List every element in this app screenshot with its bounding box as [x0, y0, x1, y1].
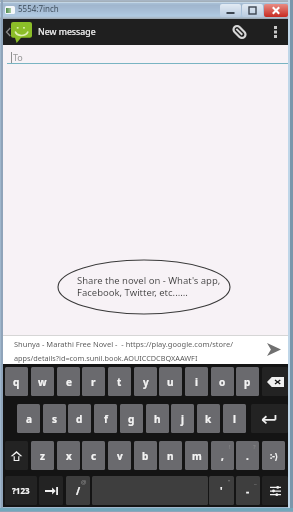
- staticText: @: [81, 478, 87, 486]
- staticText: apps/details?id=com.sunil.book.AOUICCDCB…: [14, 353, 198, 363]
- staticText: b: [142, 449, 149, 463]
- button[interactable]: @: [66, 476, 90, 505]
- button[interactable]: ": [209, 476, 234, 505]
- staticText: q: [13, 375, 20, 389]
- staticText: f: [104, 412, 108, 426]
- button[interactable]: k: [197, 404, 220, 433]
- staticText: New message: [38, 26, 96, 38]
- staticText: i: [195, 375, 198, 389]
- staticText: !: [229, 443, 231, 451]
- staticText: o: [219, 375, 226, 389]
- staticText: d: [76, 412, 83, 426]
- staticText: v: [117, 449, 123, 463]
- button[interactable]: o: [211, 367, 234, 396]
- button[interactable]: l: [223, 404, 246, 433]
- button[interactable]: a: [17, 404, 40, 433]
- button[interactable]: j: [171, 404, 194, 433]
- button[interactable]: Attach: [226, 19, 252, 45]
- button[interactable]: x: [57, 441, 80, 470]
- staticText: 5554:7inch: [18, 3, 59, 14]
- button[interactable]: i: [185, 367, 208, 396]
- button[interactable]: m: [185, 441, 208, 470]
- staticText: Share the novel on - What's app,: [77, 274, 221, 287]
- button[interactable]: s: [43, 404, 66, 433]
- button[interactable]: h: [146, 404, 169, 433]
- button[interactable]: v: [108, 441, 131, 470]
- staticText: -: [246, 484, 250, 498]
- staticText: :-): [270, 450, 278, 461]
- button[interactable]: Settings: [262, 476, 288, 505]
- staticText: t: [117, 375, 122, 389]
- staticText: Facebook, Twitter, etc......: [77, 286, 188, 299]
- button[interactable]: !: [211, 441, 234, 470]
- button[interactable]: d: [68, 404, 91, 433]
- button[interactable]: ?: [236, 441, 259, 470]
- button[interactable]: q: [5, 367, 28, 396]
- button[interactable]: r: [82, 367, 105, 396]
- staticText: c: [91, 449, 97, 463]
- button[interactable]: Shift: [5, 441, 28, 470]
- staticText: l: [233, 412, 236, 426]
- button[interactable]: f: [94, 404, 117, 433]
- staticText: ': [220, 484, 223, 498]
- button[interactable]: c: [82, 441, 105, 470]
- staticText: y: [143, 375, 149, 389]
- staticText: r: [91, 375, 96, 389]
- staticText: j: [181, 412, 184, 426]
- staticText: Shunya - Marathi Free Novel - - https://…: [14, 339, 234, 349]
- staticText: _: [254, 478, 257, 486]
- staticText: k: [205, 412, 212, 426]
- button[interactable]: Minimize: [220, 4, 241, 17]
- button[interactable]: More options: [265, 19, 285, 45]
- button[interactable]: Navigate up: [3, 19, 32, 45]
- staticText: .: [246, 449, 249, 463]
- button[interactable]: Send: [260, 335, 288, 364]
- staticText: To: [13, 51, 23, 63]
- button[interactable]: Enter: [251, 404, 288, 433]
- button[interactable]: _: [236, 476, 260, 505]
- staticText: h: [154, 412, 161, 426]
- staticText: z: [40, 449, 45, 463]
- button[interactable]: g: [120, 404, 143, 433]
- button[interactable]: y: [134, 367, 157, 396]
- button[interactable]: Maximize: [242, 4, 263, 17]
- staticText: x: [66, 449, 72, 463]
- staticText: ?123: [12, 485, 30, 496]
- staticText: n: [167, 449, 174, 463]
- staticText: ": [228, 478, 231, 486]
- staticText: /: [76, 484, 81, 498]
- button[interactable]: t: [108, 367, 131, 396]
- staticText: ?: [253, 443, 256, 451]
- button[interactable]: ?123: [5, 476, 37, 505]
- button[interactable]: Tab: [39, 476, 63, 505]
- staticText: m: [192, 449, 202, 463]
- button[interactable]: w: [31, 367, 54, 396]
- button[interactable]: Close: [264, 4, 288, 17]
- button[interactable]: e: [57, 367, 80, 396]
- button[interactable]: :-): [262, 441, 285, 470]
- button[interactable]: n: [159, 441, 182, 470]
- staticText: e: [66, 375, 72, 389]
- button[interactable]: Backspace: [262, 367, 288, 396]
- staticText: u: [167, 375, 174, 389]
- staticText: ,: [221, 449, 224, 463]
- staticText: p: [244, 375, 251, 389]
- staticText: w: [38, 375, 47, 389]
- button[interactable]: z: [31, 441, 54, 470]
- staticText: g: [128, 412, 135, 426]
- button[interactable]: p: [236, 367, 259, 396]
- button[interactable]: b: [134, 441, 157, 470]
- staticText: a: [26, 412, 32, 426]
- button[interactable]: u: [159, 367, 182, 396]
- staticText: s: [52, 412, 58, 426]
